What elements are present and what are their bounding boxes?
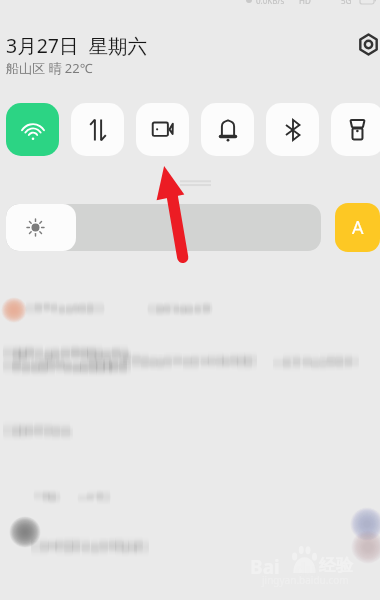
button[interactable]: Brightness — [6, 204, 321, 251]
button[interactable]: Mobile data — [71, 103, 124, 156]
button[interactable]: Settings — [355, 31, 380, 57]
staticText: HD — [299, 0, 311, 5]
button[interactable]: Do not disturb — [201, 103, 254, 156]
button[interactable]: Auto brightness — [335, 203, 380, 252]
staticText: 0.0KB/s — [256, 0, 285, 5]
button[interactable]: Screen record — [136, 103, 189, 156]
staticText: 船山区 晴 22℃ — [6, 59, 93, 77]
button[interactable]: Wi-Fi — [6, 103, 59, 156]
staticText: du — [295, 558, 317, 581]
button[interactable]: Flashlight — [331, 103, 380, 156]
staticText: 3月27日 星期六 — [6, 32, 148, 59]
staticText: 5G — [341, 0, 352, 5]
staticText: A — [352, 215, 364, 240]
staticText: 经验 — [319, 555, 353, 576]
button[interactable]: Bluetooth — [266, 103, 319, 156]
